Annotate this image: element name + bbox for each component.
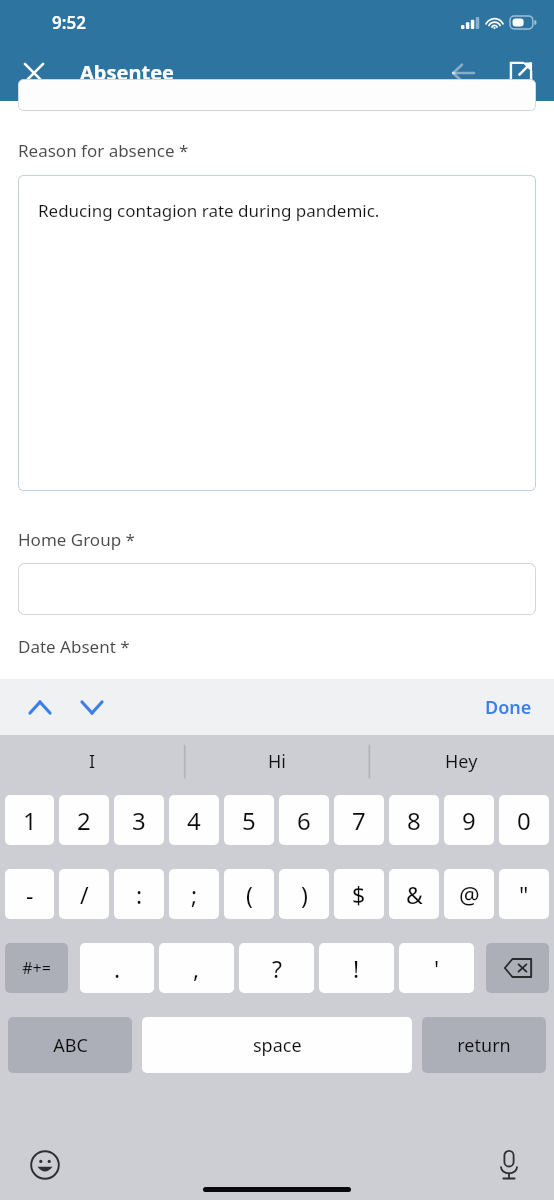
button[interactable]: Dictation — [486, 1142, 532, 1188]
button[interactable]: / — [59, 869, 109, 919]
staticText: 2 — [77, 804, 91, 837]
button[interactable]: $ — [334, 869, 384, 919]
staticText: 9:52 — [52, 11, 86, 34]
staticText: 6 — [297, 804, 311, 837]
button[interactable]: Close — [10, 49, 58, 97]
button[interactable]: " — [499, 869, 549, 919]
button[interactable]: Next field — [70, 685, 114, 729]
button[interactable]: #+= — [5, 943, 68, 993]
staticText: ; — [191, 879, 198, 910]
button[interactable]: ! — [319, 943, 394, 993]
staticText: & — [406, 879, 423, 910]
button[interactable]: . — [80, 943, 154, 993]
staticText: 4 — [187, 804, 201, 837]
staticText: - — [26, 879, 34, 910]
button[interactable]: - — [5, 869, 54, 919]
staticText: return — [457, 1033, 511, 1058]
staticText: I — [89, 749, 96, 774]
staticText: Reducing contagion rate during pandemic. — [38, 199, 380, 222]
staticText: $ — [352, 879, 366, 910]
staticText: Done — [485, 695, 532, 720]
staticText: . — [114, 953, 121, 984]
button[interactable]: Back — [440, 50, 486, 96]
button[interactable]: ) — [279, 869, 329, 919]
button[interactable]: 5 — [224, 795, 274, 845]
staticText: Home Group * — [18, 528, 135, 551]
button[interactable]: return — [422, 1017, 546, 1073]
staticText: 0 — [517, 804, 531, 837]
button[interactable]: ABC — [8, 1017, 132, 1073]
button[interactable]: , — [159, 943, 234, 993]
button[interactable]: 4 — [169, 795, 219, 845]
staticText: ? — [272, 953, 282, 984]
button[interactable]: Open external — [500, 52, 542, 94]
staticText: #+= — [22, 957, 51, 979]
staticText: @ — [459, 879, 480, 910]
staticText: 9 — [462, 804, 476, 837]
staticText: / — [80, 879, 89, 910]
button[interactable]: Previous field — [18, 685, 62, 729]
button[interactable]: 9 — [444, 795, 494, 845]
staticText: 3 — [132, 804, 146, 837]
button[interactable]: Hey — [369, 735, 554, 788]
staticText: Absentee — [80, 59, 175, 86]
staticText: " — [519, 879, 529, 910]
button[interactable]: & — [389, 869, 439, 919]
staticText: ! — [353, 953, 360, 984]
button[interactable]: Done — [477, 689, 540, 726]
button[interactable]: 7 — [334, 795, 384, 845]
staticText: 8 — [407, 804, 421, 837]
button[interactable]: Emoji — [22, 1142, 68, 1188]
button[interactable]: Reducing contagion rate during pandemic. — [18, 175, 536, 491]
button[interactable] — [18, 563, 536, 615]
button[interactable]: ; — [169, 869, 219, 919]
button[interactable]: ? — [239, 943, 314, 993]
staticText: Hey — [445, 749, 478, 774]
button[interactable]: : — [114, 869, 164, 919]
button[interactable]: 3 — [114, 795, 164, 845]
staticText: ' — [434, 953, 440, 984]
staticText: Date Absent * — [18, 635, 130, 658]
button[interactable]: Hi — [184, 735, 369, 788]
button[interactable]: ( — [224, 869, 274, 919]
button[interactable]: ' — [399, 943, 474, 993]
button[interactable]: Delete — [486, 943, 549, 993]
staticText: ) — [301, 879, 308, 910]
staticText: , — [193, 953, 200, 984]
button[interactable]: 2 — [59, 795, 109, 845]
staticText: 1 — [23, 804, 37, 837]
staticText: ABC — [53, 1033, 88, 1058]
staticText: space — [253, 1033, 302, 1058]
button[interactable]: 0 — [499, 795, 549, 845]
button[interactable]: space — [142, 1017, 412, 1073]
staticText: Reason for absence * — [18, 139, 189, 162]
staticText: 5 — [242, 804, 256, 837]
staticText: ( — [246, 879, 253, 910]
staticText: 7 — [352, 804, 366, 837]
button[interactable]: 8 — [389, 795, 439, 845]
button[interactable]: I — [0, 735, 184, 788]
staticText: : — [136, 879, 143, 910]
button[interactable]: 6 — [279, 795, 329, 845]
button[interactable]: @ — [444, 869, 494, 919]
staticText: Hi — [268, 749, 286, 774]
button[interactable]: 1 — [5, 795, 54, 845]
button[interactable] — [18, 79, 536, 111]
